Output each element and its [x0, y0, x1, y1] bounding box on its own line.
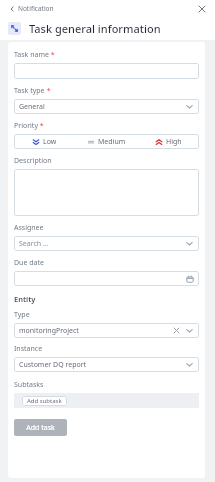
staticText: Add task — [26, 423, 55, 433]
staticText: Entity — [14, 294, 36, 304]
button[interactable]: Clear type — [172, 326, 181, 335]
button[interactable]: Close — [195, 2, 208, 15]
staticText: monitoringProject — [19, 326, 79, 336]
button[interactable]: monitoringProject — [14, 323, 199, 338]
button[interactable]: Add subtask — [22, 396, 67, 406]
button[interactable]: High — [137, 134, 199, 149]
button[interactable]: Add task — [14, 419, 67, 436]
staticText: Assignee — [14, 223, 44, 233]
staticText: Task type — [14, 86, 45, 96]
staticText: Customer DQ report — [19, 360, 87, 370]
button[interactable] — [14, 169, 199, 216]
staticText: * — [45, 86, 51, 96]
staticText: Task name — [14, 50, 49, 60]
staticText: * — [49, 50, 55, 60]
button[interactable] — [14, 271, 199, 286]
staticText: Add subtask — [27, 397, 62, 405]
staticText: Description — [14, 156, 52, 166]
button[interactable]: Notification — [7, 2, 56, 15]
staticText: * — [38, 121, 44, 131]
staticText: Task general information — [29, 21, 161, 36]
staticText: Type — [14, 310, 30, 320]
staticText: Search ... — [19, 239, 49, 249]
staticText: Subtasks — [14, 380, 44, 390]
staticText: Instance — [14, 344, 43, 354]
staticText: Due date — [14, 258, 44, 268]
staticText: Priority — [14, 121, 38, 131]
staticText: High — [166, 137, 182, 147]
staticText: Medium — [98, 137, 126, 147]
staticText: Notification — [18, 4, 54, 13]
button[interactable]: General — [14, 99, 199, 114]
button[interactable]: Customer DQ report — [14, 357, 199, 372]
button[interactable] — [14, 63, 199, 79]
staticText: General — [19, 102, 45, 112]
button[interactable]: Low — [14, 134, 75, 149]
button[interactable]: Search ... — [14, 236, 199, 251]
staticText: Low — [43, 137, 57, 147]
button[interactable]: Medium — [75, 134, 137, 149]
